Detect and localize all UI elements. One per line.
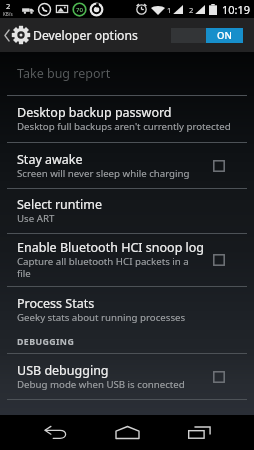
- staticText: ON: [217, 29, 232, 42]
- button[interactable]: Enable Bluetooth HCI snoop log: [0, 234, 254, 286]
- staticText: 10:19: [222, 2, 251, 17]
- staticText: Take bug report: [17, 65, 111, 82]
- button[interactable]: Take bug report: [0, 52, 254, 95]
- staticText: Geeky stats about running processes: [17, 311, 186, 324]
- button[interactable]: USB debugging: [0, 354, 254, 399]
- staticText: 2: [189, 5, 194, 15]
- staticText: 2: [6, 1, 11, 11]
- staticText: Process Stats: [17, 295, 95, 312]
- staticText: Desktop backup password: [17, 104, 172, 121]
- button[interactable]: Back: [19, 415, 91, 450]
- button[interactable]: Navigate up: [0, 18, 33, 52]
- button[interactable]: Stay awake: [0, 143, 254, 188]
- staticText: 70: [76, 6, 83, 14]
- staticText: Select runtime: [17, 196, 103, 213]
- button[interactable]: Home: [91, 415, 163, 450]
- staticText: Developer options: [33, 27, 138, 44]
- staticText: Desktop full backups aren't currently pr…: [17, 120, 231, 133]
- staticText: Enable Bluetooth HCI snoop log: [17, 239, 205, 256]
- button[interactable]: Select runtime: [0, 189, 254, 233]
- button[interactable]: Desktop backup password: [0, 96, 254, 142]
- staticText: Debug mode when USB is connected: [17, 378, 185, 391]
- button[interactable]: Developer options on: [171, 28, 243, 43]
- staticText: KB/s: [3, 11, 13, 17]
- staticText: USB debugging: [17, 362, 109, 379]
- staticText: Screen will never sleep while charging: [17, 167, 190, 180]
- staticText: DEBUGGING: [17, 336, 75, 348]
- staticText: Use ART: [17, 212, 55, 225]
- button[interactable]: Process Stats: [0, 287, 254, 332]
- staticText: Capture all bluetooth HCI packets in a f…: [17, 255, 189, 280]
- button[interactable]: Recent apps: [163, 415, 235, 450]
- staticText: Stay awake: [17, 151, 83, 168]
- staticText: 1: [167, 5, 172, 15]
